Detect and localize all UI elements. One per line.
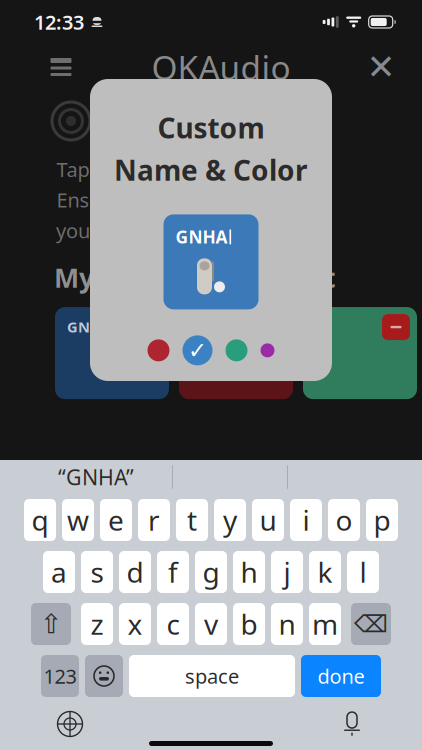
button[interactable]: b <box>233 603 265 645</box>
button[interactable]: q <box>24 499 56 541</box>
staticText: Custom <box>157 109 264 146</box>
button[interactable]: Suggestion <box>288 458 402 496</box>
staticText: o <box>335 501 352 539</box>
button[interactable]: 123 <box>41 655 79 697</box>
button[interactable]: o <box>328 499 360 541</box>
button[interactable]: Purple <box>260 343 274 357</box>
staticText: Name & Color <box>114 151 308 188</box>
staticText: r <box>148 501 160 539</box>
button[interactable]: x <box>119 603 151 645</box>
button[interactable]: y <box>214 499 246 541</box>
button[interactable]: n <box>271 603 303 645</box>
button[interactable]: g <box>195 551 227 593</box>
staticText: g <box>202 553 219 591</box>
button[interactable]: m <box>309 603 341 645</box>
staticText: c <box>166 605 179 643</box>
button[interactable]: l <box>347 551 379 593</box>
staticText: x <box>127 605 142 643</box>
staticText: ⇧ <box>40 609 62 639</box>
button[interactable]: space <box>129 655 295 697</box>
staticText: b <box>240 605 257 643</box>
button[interactable]: Shift <box>31 603 71 645</box>
button[interactable]: w <box>62 499 94 541</box>
staticText: v <box>204 605 218 643</box>
staticText: l <box>359 553 366 591</box>
button[interactable]: Blue, selected <box>182 335 212 365</box>
staticText: t <box>324 260 336 295</box>
staticText: j <box>283 553 290 591</box>
button[interactable]: u <box>252 499 284 541</box>
button[interactable]: s <box>81 551 113 593</box>
staticText: d <box>126 553 143 591</box>
button[interactable]: Green <box>225 339 247 361</box>
button[interactable]: r <box>138 499 170 541</box>
staticText: 12:33 <box>34 9 84 35</box>
button[interactable]: z <box>81 603 113 645</box>
staticText: QKAudio <box>151 45 290 89</box>
button[interactable]: Next keyboard <box>48 707 92 741</box>
button[interactable]: “GNHA” <box>20 458 172 496</box>
button[interactable]: Suggestion <box>173 458 287 496</box>
staticText: Ens <box>56 187 89 213</box>
staticText: t <box>187 501 197 539</box>
button[interactable]: t <box>176 499 208 541</box>
button[interactable]: j <box>271 551 303 593</box>
button[interactable]: k <box>309 551 341 593</box>
staticText: i <box>302 501 309 539</box>
button[interactable]: p <box>366 499 398 541</box>
button[interactable]: done <box>301 655 381 697</box>
staticText: k <box>317 553 332 591</box>
staticText: u <box>259 501 276 539</box>
staticText: y <box>223 501 237 539</box>
staticText: ⌫ <box>354 610 388 638</box>
button[interactable]: d <box>119 551 151 593</box>
staticText: s <box>90 553 103 591</box>
staticText: q <box>31 501 48 539</box>
button[interactable]: h <box>233 551 265 593</box>
button[interactable]: Delete <box>351 603 391 645</box>
button[interactable]: f <box>157 551 189 593</box>
staticText: p <box>373 501 390 539</box>
staticText: GNHA <box>175 225 227 248</box>
staticText: h <box>240 553 257 591</box>
staticText: ✕ <box>366 47 395 87</box>
staticText: space <box>185 663 239 689</box>
button[interactable]: c <box>157 603 189 645</box>
staticText: w <box>67 501 89 539</box>
staticText: you <box>56 217 90 244</box>
button[interactable]: Emoji <box>85 655 123 697</box>
staticText: ✓ <box>188 337 207 363</box>
button[interactable]: v <box>195 603 227 645</box>
button[interactable]: i <box>290 499 322 541</box>
button[interactable]: e <box>100 499 132 541</box>
staticText: f <box>168 553 178 591</box>
staticText: z <box>90 605 103 643</box>
button[interactable]: Menu <box>38 45 84 89</box>
staticText: done <box>317 663 364 689</box>
staticText: GNHA <box>67 317 111 337</box>
staticText: n <box>278 605 295 643</box>
staticText: a <box>51 553 67 591</box>
staticText: 123 <box>43 663 76 689</box>
button[interactable]: Close <box>358 45 404 89</box>
staticText: “GNHA” <box>58 463 134 491</box>
staticText: m <box>312 605 338 643</box>
button[interactable]: Red <box>147 339 169 361</box>
staticText: My <box>54 260 94 295</box>
staticText: e <box>108 501 124 539</box>
staticText: Tap <box>56 156 89 183</box>
button[interactable]: Dictate <box>330 707 374 741</box>
button[interactable]: a <box>43 551 75 593</box>
